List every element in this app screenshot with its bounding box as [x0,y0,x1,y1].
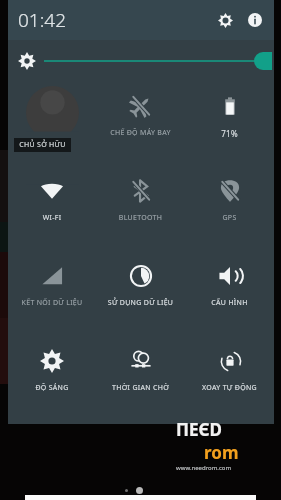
button[interactable]: SỬ DỤNG DỮ LIỆU [96,252,185,337]
staticText: www.needrom.com [176,464,232,472]
button[interactable]: ĐỘ SÁNG [8,337,96,422]
staticText: ĐỘ SÁNG [8,383,96,393]
staticText: GPS [185,213,274,223]
button[interactable]: Settings [212,7,238,33]
button[interactable]: XOAY TỰ ĐỘNG [185,337,274,422]
button[interactable]: BLUETOOTH [96,167,185,252]
staticText: SỬ DỤNG DỮ LIỆU [96,298,185,308]
staticText: CẤU HÌNH [185,298,274,308]
staticText: 01:42 [18,7,67,33]
button[interactable]: WI-FI [8,167,96,252]
staticText: BLUETOOTH [96,213,185,223]
button[interactable]: KẾT NỐI DỮ LIỆU [8,252,96,337]
staticText: XOAY TỰ ĐỘNG [185,383,274,393]
staticText: THỜI GIAN CHỜ [96,383,185,393]
button[interactable]: GPS [185,167,274,252]
staticText: CHẾ ĐỘ MÁY BAY [96,128,185,138]
staticText: rom [204,441,239,464]
button[interactable]: CẤU HÌNH [185,252,274,337]
button[interactable]: Info [242,7,268,33]
staticText: WI-FI [8,213,96,223]
button[interactable]: Brightness slider [8,40,274,82]
button[interactable]: 71% [185,82,274,167]
button[interactable]: Owner user [8,82,96,167]
staticText: CHỦ SỞ HỮU [19,140,66,150]
staticText: 71% [185,128,274,139]
staticText: KẾT NỐI DỮ LIỆU [8,298,96,308]
button[interactable]: THỜI GIAN CHỜ [96,337,185,422]
button[interactable]: CHẾ ĐỘ MÁY BAY [96,82,185,167]
staticText: ПЕЄD [176,418,223,441]
